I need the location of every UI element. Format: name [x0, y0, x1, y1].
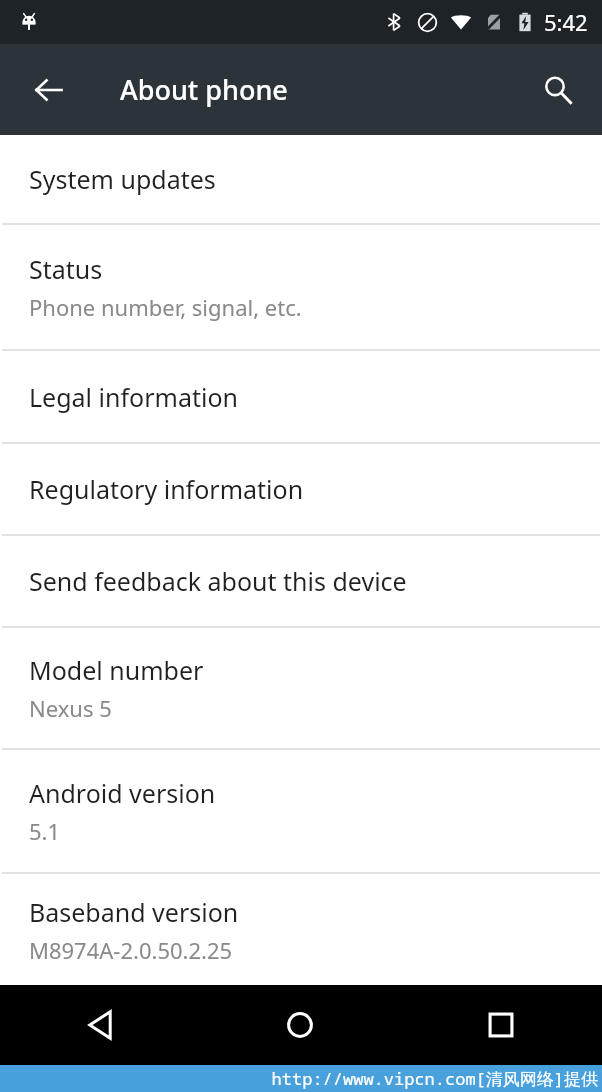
staticText: Status: [29, 252, 103, 286]
button[interactable]: Back: [0, 985, 200, 1065]
button[interactable]: Search: [530, 62, 586, 118]
staticText: M8974A-2.0.50.2.25: [29, 935, 233, 965]
button[interactable]: Model number: [2, 628, 600, 748]
button[interactable]: Android version: [2, 750, 600, 872]
staticText: http://www.vipcn.com[清风网络]提供: [271, 1067, 598, 1090]
staticText: System updates: [29, 162, 216, 196]
button[interactable]: Legal information: [2, 351, 600, 442]
button[interactable]: Back: [22, 63, 76, 117]
button[interactable]: Status: [2, 225, 600, 349]
button[interactable]: Baseband version: [2, 874, 600, 985]
staticText: Model number: [29, 653, 204, 687]
staticText: Android version: [29, 776, 216, 810]
staticText: About phone: [120, 71, 288, 108]
staticText: Legal information: [29, 380, 238, 414]
button[interactable]: Home: [200, 985, 400, 1065]
button[interactable]: Recent apps: [400, 985, 602, 1065]
button[interactable]: Regulatory information: [2, 444, 600, 534]
staticText: Phone number, signal, etc.: [29, 292, 302, 322]
button[interactable]: Send feedback about this device: [2, 536, 600, 626]
staticText: Baseband version: [29, 895, 239, 929]
button[interactable]: System updates: [2, 135, 600, 223]
staticText: 5.1: [29, 816, 61, 846]
staticText: 5:42: [544, 7, 588, 37]
staticText: Send feedback about this device: [29, 564, 407, 598]
staticText: Nexus 5: [29, 693, 112, 723]
staticText: Regulatory information: [29, 472, 304, 506]
